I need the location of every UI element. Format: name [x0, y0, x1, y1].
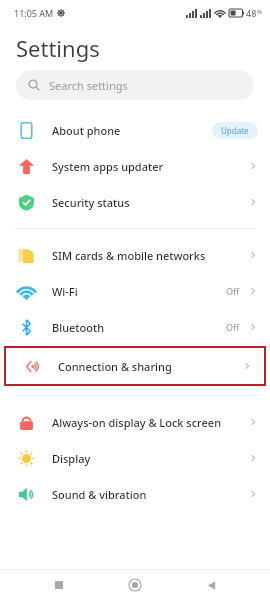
- button[interactable]: Security status: [0, 184, 270, 220]
- staticText: Connection & sharing: [58, 359, 242, 374]
- button[interactable]: Back: [194, 570, 228, 600]
- button[interactable]: Display: [0, 440, 270, 476]
- button[interactable]: Update: [212, 122, 258, 139]
- button[interactable]: SIM cards & mobile networks: [0, 237, 270, 273]
- staticText: Settings: [16, 33, 100, 63]
- button[interactable]: Bluetooth: [0, 309, 270, 345]
- staticText: %: [257, 8, 262, 16]
- staticText: Wi-Fi: [52, 284, 226, 299]
- staticText: Off: [226, 285, 240, 297]
- button[interactable]: Recents: [42, 570, 76, 600]
- staticText: 48: [246, 7, 257, 19]
- staticText: Off: [226, 321, 240, 333]
- staticText: SIM cards & mobile networks: [52, 248, 248, 263]
- button[interactable]: Always-on display & Lock screen: [0, 404, 270, 440]
- staticText: Update: [221, 125, 249, 136]
- staticText: Always-on display & Lock screen: [52, 415, 248, 430]
- button[interactable]: Connection & sharing: [6, 348, 264, 384]
- button[interactable]: About phone: [0, 112, 270, 148]
- staticText: About phone: [52, 123, 212, 138]
- button[interactable]: Home: [118, 570, 152, 600]
- button[interactable]: Wi-Fi: [0, 273, 270, 309]
- button[interactable]: Sound & vibration: [0, 476, 270, 512]
- other: Settings indicator: [57, 9, 65, 17]
- staticText: 11:05 AM: [14, 7, 54, 19]
- button[interactable]: Search settings: [16, 70, 254, 100]
- staticText: Security status: [52, 195, 248, 210]
- staticText: System apps updater: [52, 159, 248, 174]
- staticText: Bluetooth: [52, 320, 226, 335]
- staticText: Display: [52, 451, 248, 466]
- staticText: Search settings: [49, 78, 128, 93]
- staticText: Sound & vibration: [52, 487, 248, 502]
- button[interactable]: System apps updater: [0, 148, 270, 184]
